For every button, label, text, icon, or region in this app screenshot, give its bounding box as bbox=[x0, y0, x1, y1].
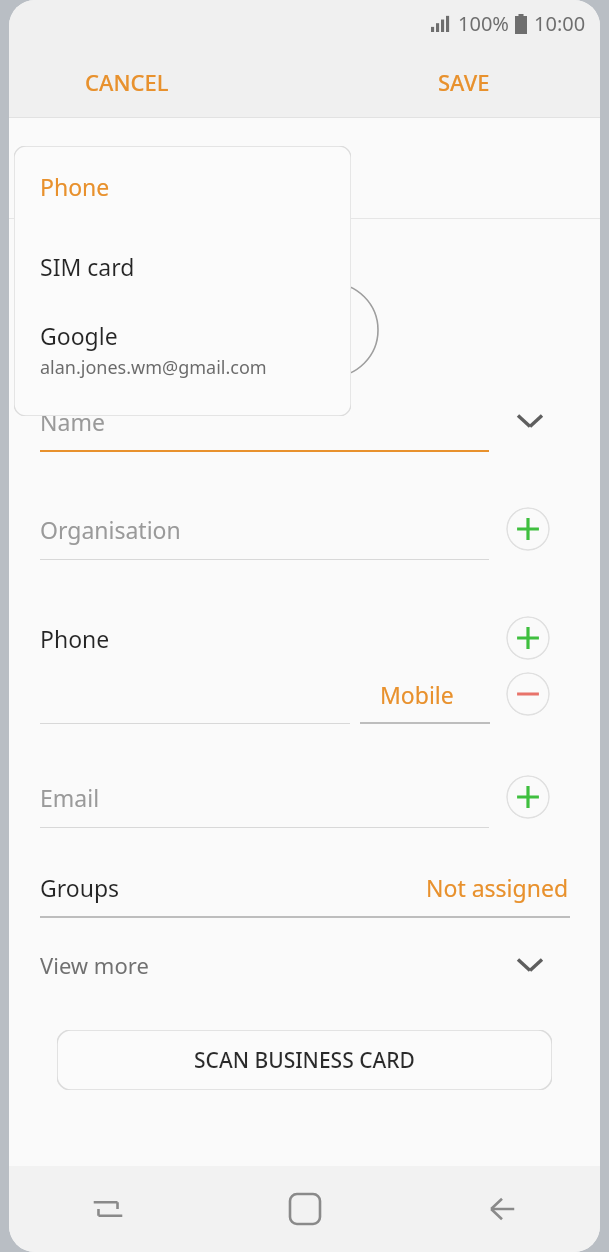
button[interactable]: SIM card bbox=[14, 226, 351, 306]
staticText: SCAN BUSINESS CARD bbox=[194, 1046, 415, 1075]
button[interactable]: Add phone bbox=[506, 616, 550, 660]
staticText: SIM card bbox=[40, 251, 135, 282]
staticText: Groups bbox=[40, 872, 120, 903]
button[interactable]: View more bbox=[9, 936, 600, 994]
staticText: Mobile bbox=[380, 679, 454, 710]
button[interactable]: Recents bbox=[9, 1166, 206, 1252]
staticText: 10:00 bbox=[534, 10, 586, 37]
button[interactable]: Phone bbox=[14, 146, 351, 226]
staticText: Phone bbox=[40, 171, 110, 202]
staticText: Name bbox=[40, 406, 105, 437]
button[interactable]: CANCEL bbox=[71, 57, 183, 107]
staticText: alan.jones.wm@gmail.com bbox=[40, 355, 267, 380]
staticText: 100% bbox=[458, 10, 509, 37]
staticText: View more bbox=[40, 950, 149, 980]
button[interactable]: Home bbox=[206, 1166, 403, 1252]
staticText: Phone bbox=[40, 623, 110, 654]
button[interactable]: Add email bbox=[506, 775, 550, 819]
staticText: Email bbox=[40, 782, 100, 813]
button[interactable]: SAVE bbox=[424, 57, 504, 107]
button[interactable]: Organisation bbox=[9, 498, 600, 560]
staticText: Google bbox=[40, 320, 118, 351]
staticText: CANCEL bbox=[85, 67, 169, 97]
button[interactable]: Back bbox=[403, 1166, 600, 1252]
button[interactable]: SCAN BUSINESS CARD bbox=[57, 1030, 552, 1090]
button[interactable]: Add photo bbox=[283, 282, 379, 378]
button[interactable]: Name bbox=[9, 390, 600, 452]
button[interactable]: Expand name bbox=[510, 401, 550, 441]
staticText: Not assigned bbox=[426, 872, 569, 903]
button[interactable]: Remove phone bbox=[506, 672, 550, 716]
button[interactable]: Google bbox=[14, 306, 351, 414]
button[interactable]: Email bbox=[9, 766, 600, 828]
button[interactable]: Groups bbox=[9, 856, 600, 918]
staticText: Organisation bbox=[40, 514, 181, 545]
staticText: SAVE bbox=[438, 67, 490, 97]
button[interactable]: Add organisation bbox=[506, 507, 550, 551]
